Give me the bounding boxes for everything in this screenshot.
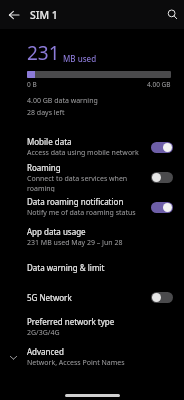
- button[interactable]: Roaming: [0, 162, 184, 192]
- button[interactable]: Data roaming notification: [149, 198, 175, 216]
- button[interactable]: App data usage: [0, 222, 184, 252]
- button[interactable]: Data roaming notification: [0, 192, 184, 222]
- button[interactable]: 5G Network: [149, 288, 175, 306]
- staticText: MB used: [63, 53, 97, 64]
- staticText: SIM 1: [30, 8, 58, 22]
- button[interactable]: Mobile data: [0, 132, 184, 162]
- button[interactable]: Search: [163, 5, 181, 23]
- button[interactable]: Preferred network type: [0, 312, 184, 342]
- button[interactable]: Advanced: [0, 342, 184, 372]
- button[interactable]: Data warning & limit: [0, 252, 184, 282]
- staticText: Roaming: [27, 162, 61, 173]
- staticText: 4.00 GB: [147, 80, 171, 89]
- button[interactable]: Roaming: [149, 168, 175, 186]
- staticText: 231: [27, 40, 60, 66]
- staticText: 231 MB used May 29 – Jun 28: [27, 238, 123, 248]
- staticText: Preferred network type: [27, 316, 115, 327]
- staticText: Data roaming notification: [27, 196, 124, 207]
- staticText: App data usage: [27, 226, 86, 237]
- button[interactable]: Mobile data: [149, 138, 175, 156]
- staticText: 4.00 GB data warning: [27, 96, 98, 106]
- staticText: 5G Network: [27, 292, 72, 303]
- staticText: Connect to data services when roaming: [27, 174, 149, 192]
- staticText: 2G/3G/4G: [27, 328, 60, 338]
- staticText: Mobile data: [27, 136, 72, 147]
- button[interactable]: 5G Network: [0, 282, 184, 312]
- staticText: Access data using mobile network: [27, 148, 139, 158]
- staticText: Notify me of data roaming status: [27, 208, 136, 218]
- staticText: 0 B: [27, 80, 37, 89]
- staticText: Advanced: [27, 346, 64, 357]
- staticText: Network, Access Point Names: [27, 358, 125, 368]
- staticText: Data warning & limit: [27, 262, 105, 273]
- staticText: 28 days left: [27, 108, 65, 118]
- button[interactable]: Back: [4, 5, 24, 25]
